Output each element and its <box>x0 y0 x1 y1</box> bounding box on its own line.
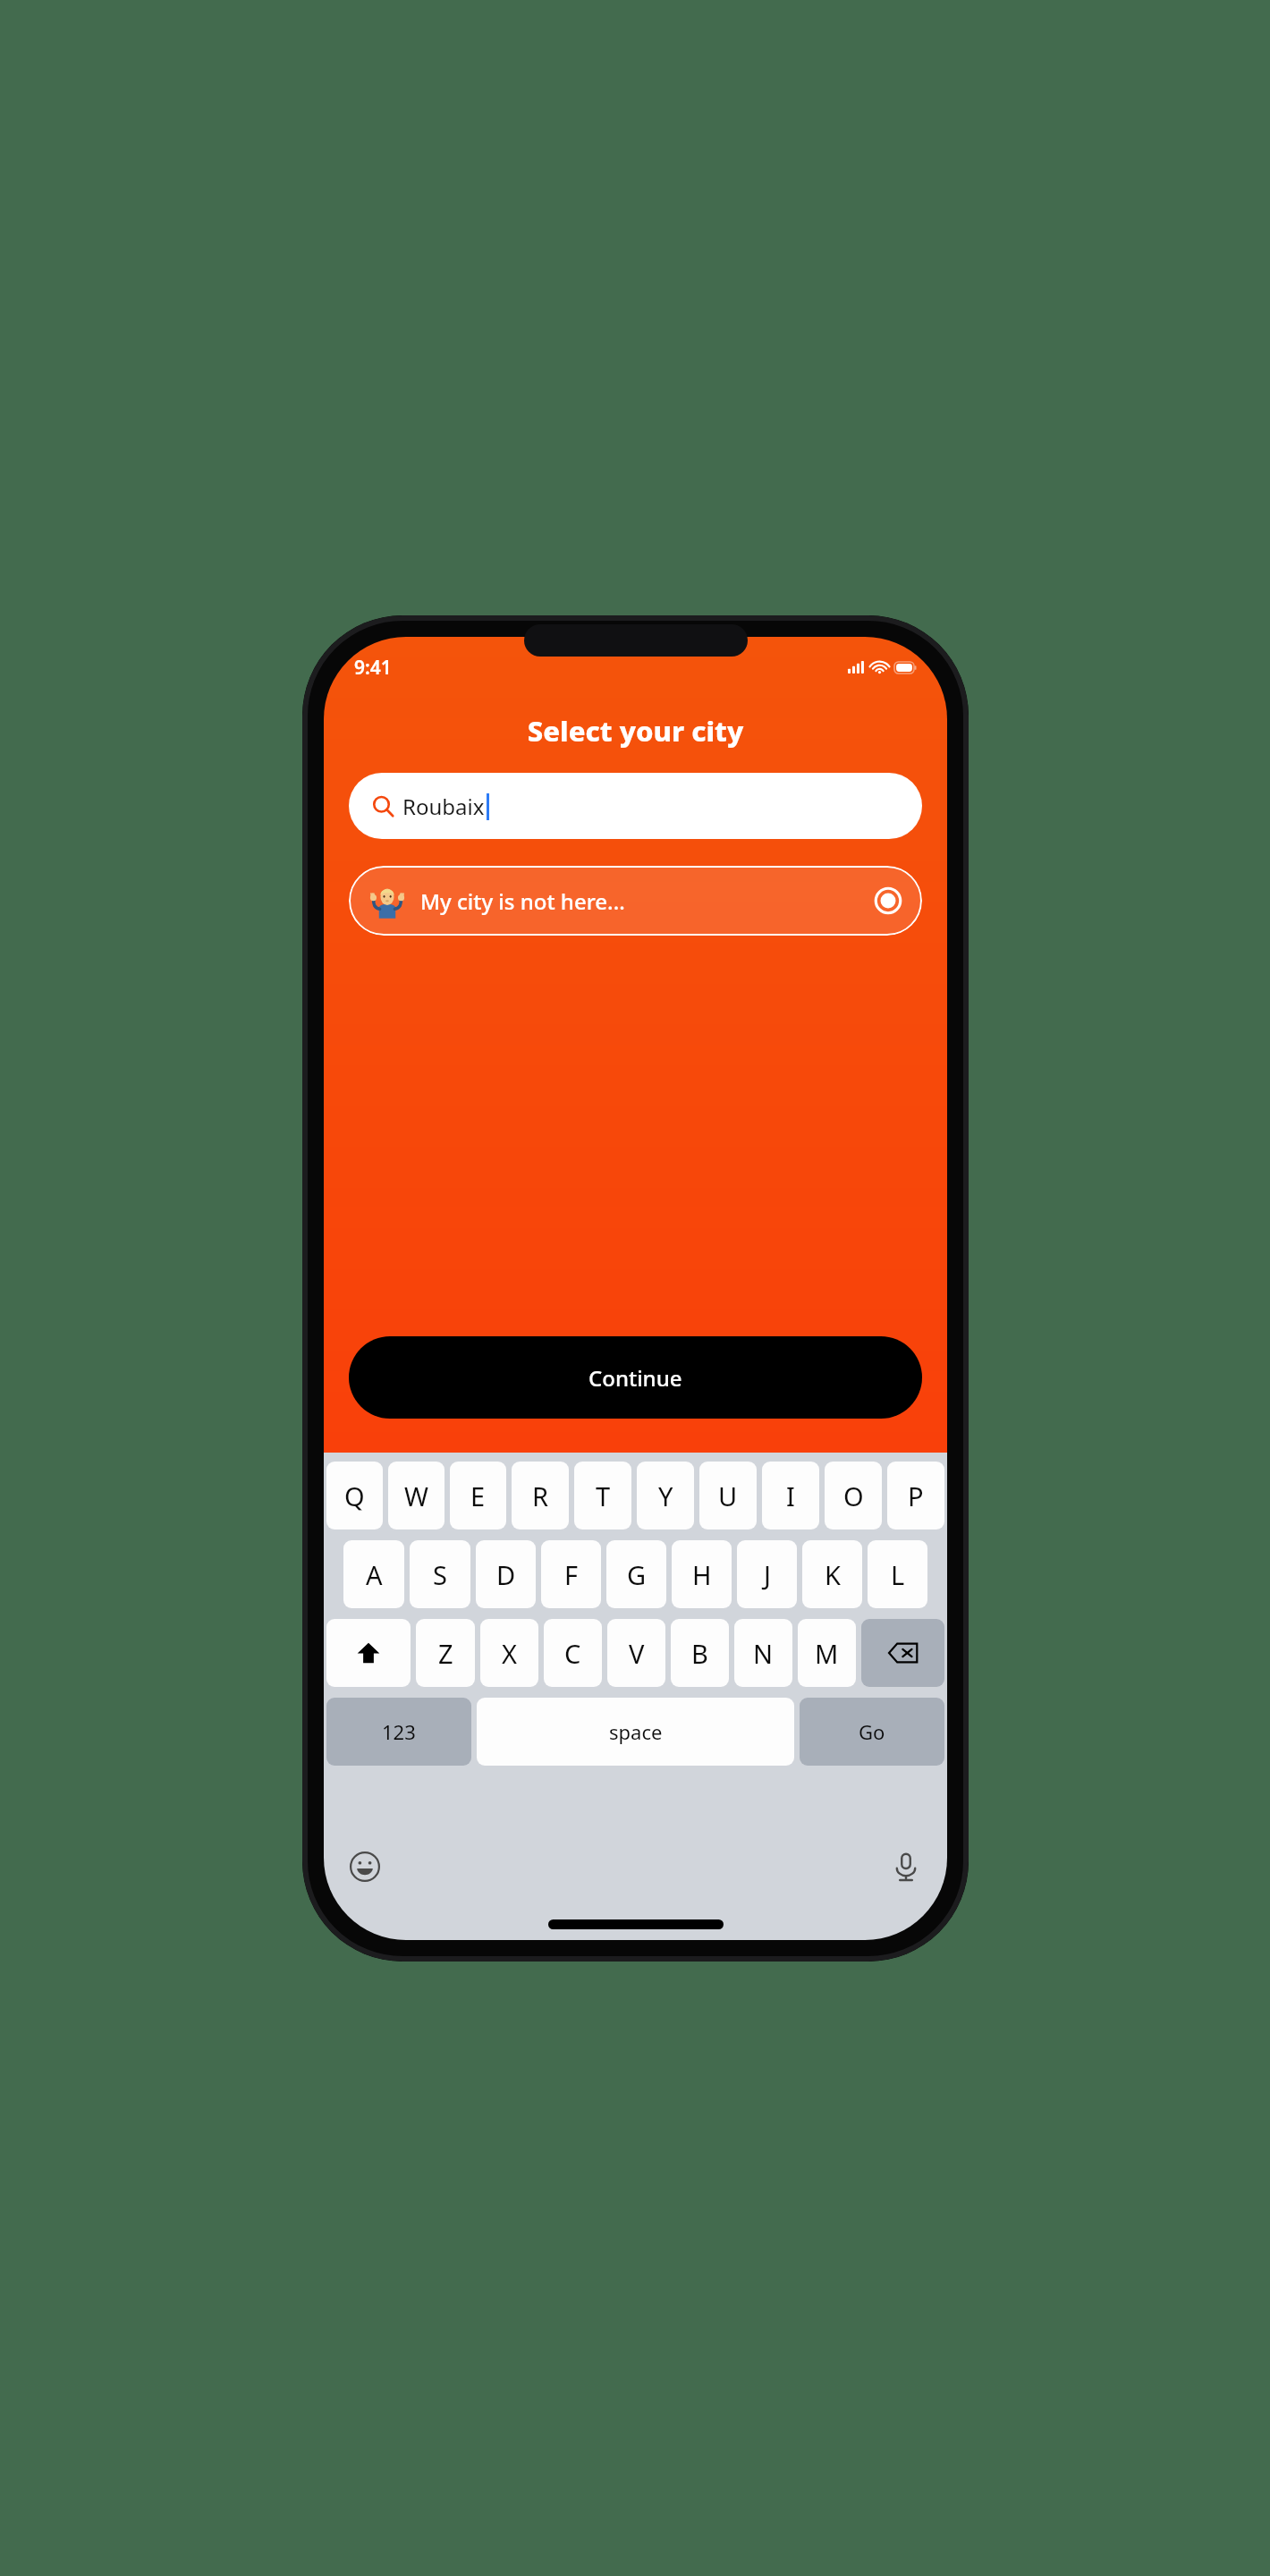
staticText: Y <box>658 1479 673 1513</box>
staticText: 123 <box>382 1718 416 1745</box>
button[interactable]: K <box>802 1540 862 1608</box>
staticText: S <box>433 1557 447 1592</box>
button[interactable]: A <box>343 1540 404 1608</box>
button[interactable]: J <box>737 1540 797 1608</box>
button[interactable]: S <box>410 1540 470 1608</box>
button[interactable]: G <box>606 1540 666 1608</box>
button[interactable]: R <box>512 1462 569 1529</box>
staticText: P <box>908 1479 924 1513</box>
staticText: C <box>564 1636 581 1671</box>
button[interactable]: Backspace <box>861 1619 944 1687</box>
staticText: My city is not here... <box>420 886 625 916</box>
staticText: B <box>691 1636 708 1671</box>
staticText: K <box>825 1557 841 1592</box>
button[interactable]: space <box>477 1698 794 1766</box>
button[interactable]: Go <box>800 1698 944 1766</box>
staticText: E <box>470 1479 486 1513</box>
staticText: Select your city <box>324 712 947 750</box>
button[interactable]: U <box>699 1462 757 1529</box>
staticText: W <box>404 1479 428 1513</box>
staticText: U <box>718 1479 738 1513</box>
button[interactable]: L <box>868 1540 927 1608</box>
button[interactable]: Y <box>637 1462 694 1529</box>
button[interactable]: My city is not here... <box>349 866 922 936</box>
button[interactable]: M <box>798 1619 856 1687</box>
staticText: T <box>596 1479 611 1513</box>
button[interactable]: N <box>734 1619 792 1687</box>
button[interactable]: I <box>762 1462 819 1529</box>
button[interactable]: Dictation <box>886 1847 926 1886</box>
staticText: V <box>629 1636 645 1671</box>
staticText: 9:41 <box>354 655 392 681</box>
button[interactable]: O <box>825 1462 882 1529</box>
staticText: N <box>753 1636 774 1671</box>
button[interactable]: W <box>388 1462 444 1529</box>
button[interactable]: Continue <box>349 1336 922 1419</box>
staticText: O <box>843 1479 864 1513</box>
staticText: I <box>786 1479 795 1513</box>
staticText: M <box>815 1636 839 1671</box>
button[interactable]: Shift <box>326 1619 411 1687</box>
staticText: Roubaix <box>402 792 485 821</box>
staticText: Z <box>438 1636 453 1671</box>
button[interactable]: C <box>544 1619 602 1687</box>
button[interactable]: Z <box>416 1619 475 1687</box>
button[interactable]: F <box>541 1540 601 1608</box>
button[interactable]: V <box>607 1619 665 1687</box>
staticText: L <box>891 1557 905 1592</box>
button[interactable]: P <box>887 1462 944 1529</box>
button[interactable]: H <box>672 1540 732 1608</box>
staticText: H <box>692 1557 712 1592</box>
staticText: R <box>532 1479 549 1513</box>
staticText: J <box>764 1557 771 1592</box>
button[interactable]: T <box>574 1462 631 1529</box>
button[interactable]: Q <box>326 1462 383 1529</box>
staticText: Go <box>859 1718 885 1745</box>
button[interactable]: D <box>476 1540 536 1608</box>
staticText: A <box>366 1557 383 1592</box>
button[interactable]: Emoji <box>345 1847 385 1886</box>
button[interactable]: Roubaix <box>349 773 922 839</box>
staticText: G <box>627 1557 647 1592</box>
staticText: F <box>564 1557 579 1592</box>
staticText: Q <box>344 1479 365 1513</box>
staticText: X <box>502 1636 517 1671</box>
button[interactable]: X <box>480 1619 538 1687</box>
button[interactable]: E <box>450 1462 506 1529</box>
button[interactable]: B <box>671 1619 729 1687</box>
staticText: Continue <box>588 1363 682 1393</box>
button[interactable]: 123 <box>326 1698 471 1766</box>
staticText: space <box>609 1718 663 1745</box>
staticText: D <box>496 1557 516 1592</box>
